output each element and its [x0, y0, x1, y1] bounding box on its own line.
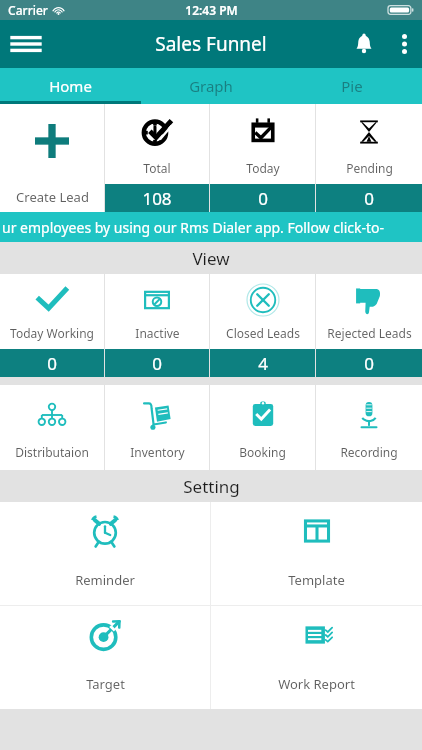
button[interactable]: Booking — [210, 385, 315, 470]
staticText: Rejected Leads — [327, 325, 412, 341]
staticText: 12:43 PM — [185, 2, 238, 18]
button[interactable]: Open navigation menu — [0, 20, 52, 68]
staticText: 0 — [258, 187, 268, 210]
staticText: View — [192, 247, 230, 270]
button[interactable]: Create Lead — [0, 104, 104, 212]
staticText: 0 — [364, 187, 374, 210]
staticText: Closed Leads — [226, 325, 300, 341]
button[interactable]: Distributaion — [0, 385, 104, 470]
staticText: Create Lead — [16, 188, 89, 206]
button[interactable]: ur employees by using our Rms Dialer app… — [0, 212, 422, 242]
button[interactable]: Pie — [281, 68, 422, 104]
staticText: Reminder — [75, 571, 135, 589]
staticText: Work Report — [278, 675, 355, 693]
staticText: Target — [86, 675, 125, 693]
staticText: Home — [49, 76, 92, 96]
staticText: Today — [246, 160, 280, 176]
staticText: Distributaion — [15, 444, 89, 460]
button[interactable]: Target — [0, 606, 210, 709]
staticText: Pie — [341, 76, 363, 96]
button[interactable]: Rejected Leads — [316, 274, 422, 377]
staticText: Booking — [239, 444, 286, 460]
button[interactable]: Home — [0, 68, 140, 104]
staticText: 0 — [47, 352, 57, 375]
staticText: 4 — [258, 352, 268, 375]
button[interactable]: Inactive — [105, 274, 209, 377]
staticText: Graph — [189, 76, 233, 96]
button[interactable]: Work Report — [211, 606, 422, 709]
staticText: 0 — [152, 352, 162, 375]
staticText: ur employees by using our Rms Dialer app… — [2, 218, 384, 237]
button[interactable]: Recording — [316, 385, 422, 470]
staticText: Total — [143, 160, 171, 176]
staticText: Setting — [183, 475, 240, 498]
button[interactable]: Total — [105, 104, 209, 212]
button[interactable]: Closed Leads — [210, 274, 315, 377]
staticText: Carrier — [8, 2, 48, 18]
button[interactable]: Template — [211, 502, 422, 605]
button[interactable]: Inventory — [105, 385, 209, 470]
button[interactable]: Today Working — [0, 274, 104, 377]
button[interactable]: Notifications — [342, 20, 386, 68]
staticText: Recording — [340, 444, 398, 460]
staticText: Today Working — [10, 325, 94, 341]
button[interactable]: Graph — [140, 68, 281, 104]
staticText: Template — [288, 571, 345, 589]
button[interactable]: Today — [210, 104, 315, 212]
button[interactable]: Pending — [316, 104, 422, 212]
button[interactable]: More options — [386, 20, 422, 68]
staticText: Inventory — [130, 444, 185, 460]
button[interactable]: Reminder — [0, 502, 210, 605]
staticText: Pending — [346, 160, 393, 176]
staticText: 0 — [364, 352, 374, 375]
staticText: Sales Funnel — [155, 31, 267, 57]
staticText: Inactive — [135, 325, 180, 341]
staticText: 108 — [142, 187, 172, 210]
